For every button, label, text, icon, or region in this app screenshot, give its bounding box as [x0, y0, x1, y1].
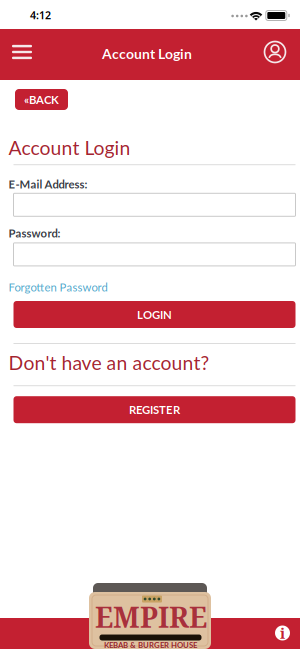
button[interactable]: Account	[258, 35, 292, 69]
button[interactable]: Menu	[4, 34, 40, 70]
staticText: Account Login	[102, 45, 192, 62]
button[interactable]: REGISTER	[13, 396, 295, 423]
button[interactable]: Forgotten Password	[13, 280, 112, 294]
staticText: LOGIN	[137, 308, 172, 321]
button[interactable]: Info	[271, 622, 293, 644]
staticText: «BACK	[24, 93, 59, 106]
button[interactable]: Back	[15, 89, 68, 110]
button[interactable]: LOGIN	[13, 301, 295, 328]
staticText: REGISTER	[129, 403, 180, 416]
staticText: Don't have an account?	[8, 351, 209, 374]
staticText: KEBAB & BURGER HOUSE	[104, 640, 197, 649]
staticText: Password:	[8, 226, 60, 240]
staticText: Account Login	[8, 136, 130, 159]
staticText: 4:12	[30, 8, 51, 22]
staticText: EMPIRE	[95, 598, 207, 636]
staticText: Forgotten Password	[8, 280, 107, 294]
staticText: i	[280, 623, 285, 643]
staticText: E-Mail Address:	[8, 177, 87, 191]
